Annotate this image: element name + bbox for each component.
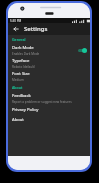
- staticText: Dark Mode: [12, 45, 34, 51]
- staticText: Privacy Policy: [12, 107, 39, 113]
- button[interactable]: Dark Mode toggle: [78, 48, 87, 53]
- staticText: Feedback: [12, 93, 31, 99]
- staticText: About: [12, 85, 23, 90]
- button[interactable]: Font Size: [8, 70, 90, 83]
- staticText: Typeface: [12, 58, 30, 64]
- staticText: Settings: [24, 25, 48, 33]
- staticText: 5:30 PM: [10, 19, 22, 23]
- staticText: Roboto (default): [12, 65, 35, 69]
- button[interactable]: Typeface: [8, 57, 90, 70]
- staticText: Medium: [12, 78, 24, 82]
- staticText: General: [12, 37, 26, 42]
- staticText: Report a problem or suggest new features: [12, 100, 72, 104]
- button[interactable]: Feedback: [8, 92, 90, 105]
- button[interactable]: Privacy Policy: [8, 105, 90, 115]
- staticText: About: [12, 117, 24, 123]
- button[interactable]: Back: [11, 24, 21, 34]
- staticText: Enables Dark Mode: [12, 52, 40, 56]
- button[interactable]: About: [8, 115, 90, 125]
- button[interactable]: Dark Mode: [8, 44, 90, 57]
- staticText: Font Size: [12, 71, 30, 77]
